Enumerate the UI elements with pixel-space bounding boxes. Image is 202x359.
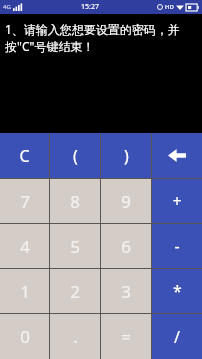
staticText: 9 <box>121 190 131 213</box>
staticText: 1、请输入您想要设置的密码，并按"C"号键结束！ <box>5 21 197 55</box>
button[interactable]: ( <box>50 133 100 178</box>
button[interactable]: 9 <box>101 179 151 223</box>
button[interactable]: + <box>152 179 202 223</box>
button[interactable]: C <box>0 133 49 178</box>
staticText: 2 <box>70 280 80 303</box>
button[interactable]: 8 <box>50 179 100 223</box>
staticText: * <box>173 280 182 302</box>
staticText: 1 <box>20 280 30 303</box>
button[interactable]: 0 <box>0 314 49 359</box>
button[interactable]: 2 <box>50 269 100 313</box>
button[interactable]: ) <box>101 133 151 178</box>
button[interactable]: 7 <box>0 179 49 223</box>
staticText: 7 <box>20 190 30 213</box>
staticText: C <box>19 145 30 167</box>
staticText: ( <box>73 145 78 167</box>
staticText: 15:27 <box>81 2 99 12</box>
staticText: 8 <box>70 190 80 213</box>
staticText: ) <box>124 145 129 167</box>
button[interactable]: 1 <box>0 269 49 313</box>
button[interactable]: 5 <box>50 224 100 268</box>
staticText: 5 <box>70 235 80 258</box>
staticText: . <box>73 325 78 348</box>
staticText: + <box>172 190 182 212</box>
staticText: 4 <box>20 235 30 258</box>
button[interactable]: * <box>152 269 202 313</box>
button[interactable]: 6 <box>101 224 151 268</box>
button[interactable]: 3 <box>101 269 151 313</box>
staticText: HD <box>165 3 174 11</box>
staticText: = <box>121 325 131 348</box>
staticText: 3 <box>121 280 131 303</box>
button[interactable]: Backspace <box>152 133 202 178</box>
button[interactable]: / <box>152 314 202 359</box>
staticText: 4G <box>3 3 11 11</box>
staticText: / <box>174 326 180 348</box>
staticText: 6 <box>121 235 131 258</box>
staticText: - <box>174 235 180 257</box>
button[interactable]: 4 <box>0 224 49 268</box>
staticText: 0 <box>20 325 30 348</box>
button[interactable]: - <box>152 224 202 268</box>
button[interactable]: = <box>101 314 151 359</box>
